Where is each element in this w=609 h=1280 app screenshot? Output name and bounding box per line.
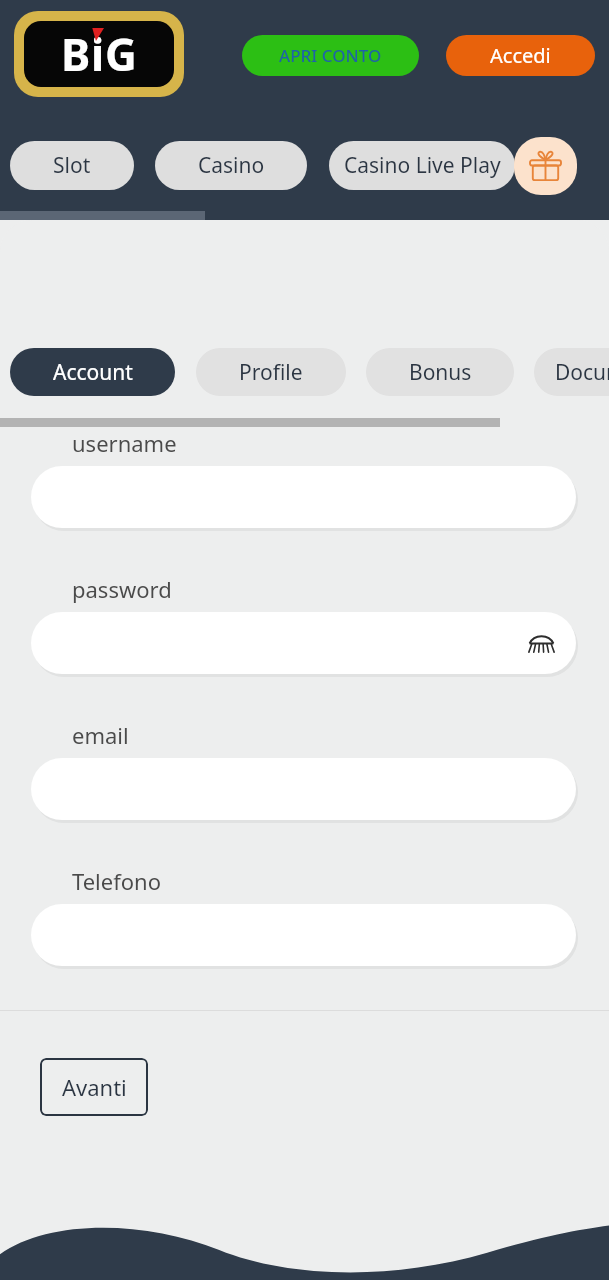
staticText: email bbox=[72, 720, 129, 750]
button[interactable] bbox=[31, 904, 576, 966]
staticText: password bbox=[72, 574, 172, 604]
staticText: Telefono bbox=[72, 866, 161, 896]
staticText: username bbox=[72, 428, 177, 458]
button[interactable] bbox=[31, 758, 576, 820]
staticText: APRI CONTO bbox=[279, 44, 382, 67]
staticText: i bbox=[91, 24, 105, 84]
staticText: Profile bbox=[239, 358, 303, 387]
button[interactable]: Profile bbox=[196, 348, 346, 396]
staticText: Casino Live Play bbox=[344, 151, 501, 180]
staticText: Slot bbox=[53, 151, 91, 180]
staticText: B bbox=[61, 24, 91, 84]
staticText: Avanti bbox=[62, 1072, 127, 1102]
button[interactable]: Bonus gift bbox=[514, 137, 577, 195]
staticText: Documenti bbox=[555, 358, 609, 387]
button[interactable]: Casino bbox=[155, 141, 307, 190]
staticText: Casino bbox=[198, 151, 265, 180]
staticText: Bonus bbox=[409, 358, 472, 387]
button[interactable]: Accedi bbox=[446, 35, 595, 76]
button[interactable]: Account bbox=[10, 348, 175, 396]
button[interactable]: Casino Live Play bbox=[329, 141, 515, 190]
staticText: Account bbox=[53, 358, 133, 387]
staticText: Accedi bbox=[490, 42, 551, 69]
button[interactable]: Documenti bbox=[534, 348, 609, 396]
staticText: G bbox=[105, 24, 137, 84]
button[interactable]: APRI CONTO bbox=[242, 35, 419, 76]
button[interactable]: Avanti bbox=[40, 1058, 148, 1116]
button[interactable] bbox=[31, 466, 576, 528]
button[interactable]: BiG home bbox=[14, 11, 184, 97]
button[interactable]: Slot bbox=[10, 141, 134, 190]
button[interactable]: Bonus bbox=[366, 348, 514, 396]
button[interactable]: Show password bbox=[31, 612, 576, 674]
button[interactable]: Show password bbox=[523, 625, 559, 661]
